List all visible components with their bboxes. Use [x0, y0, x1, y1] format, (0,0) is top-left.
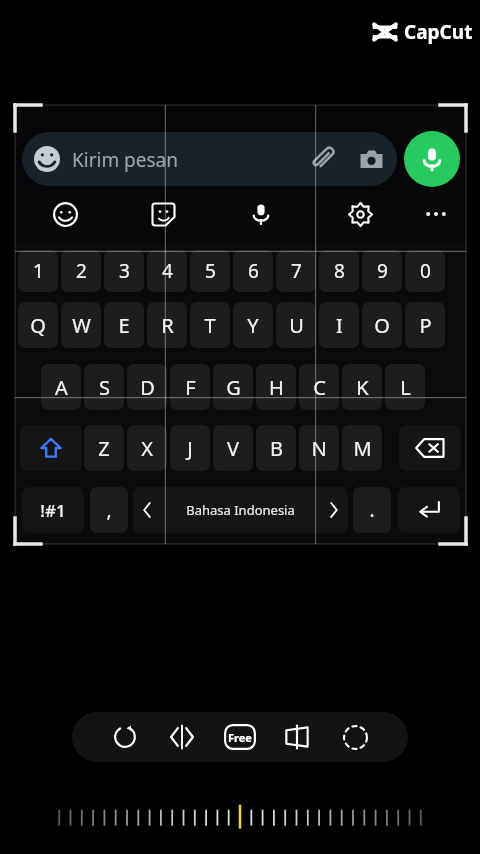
button[interactable]: 3	[104, 250, 144, 292]
staticText: 1	[33, 258, 44, 284]
staticText: !#1	[40, 499, 66, 522]
staticText: .	[369, 497, 375, 523]
staticText: H	[269, 374, 284, 401]
staticText: W	[72, 312, 91, 339]
button[interactable]: Rotate	[101, 713, 149, 761]
button[interactable]: J	[170, 425, 210, 471]
staticText: G	[226, 374, 241, 401]
button[interactable]: D	[127, 364, 167, 410]
staticText: C	[313, 374, 326, 401]
staticText: M	[353, 435, 372, 462]
button[interactable]: !#1	[22, 487, 84, 533]
button[interactable]: W	[61, 302, 101, 348]
staticText: N	[311, 435, 327, 462]
button[interactable]: 0	[405, 250, 445, 292]
button[interactable]: S	[84, 364, 124, 410]
staticText: 2	[76, 258, 87, 284]
button[interactable]: 6	[233, 250, 273, 292]
staticText: Kirim pesan	[72, 147, 179, 173]
button[interactable]: Enter	[398, 487, 460, 533]
button[interactable]: E	[104, 302, 144, 348]
button[interactable]: Attach	[305, 141, 341, 177]
button[interactable]: Backspace	[399, 425, 461, 471]
staticText: Free	[228, 730, 252, 745]
button[interactable]: K	[342, 364, 382, 410]
button[interactable]: G	[213, 364, 253, 410]
button[interactable]: L	[385, 364, 425, 410]
button[interactable]: ,	[90, 487, 128, 533]
staticText: A	[55, 374, 68, 401]
staticText: I	[336, 312, 343, 339]
button[interactable]: H	[256, 364, 296, 410]
staticText: ,	[106, 497, 112, 523]
button[interactable]: .	[353, 487, 391, 533]
button[interactable]: A	[41, 364, 81, 410]
button[interactable]: Bahasa Indonesia	[133, 487, 348, 533]
staticText: 0	[420, 258, 431, 284]
button[interactable]: V	[213, 425, 253, 471]
button[interactable]: N	[299, 425, 339, 471]
button[interactable]: I	[319, 302, 359, 348]
button[interactable]: Stickers	[141, 192, 185, 236]
staticText: 3	[119, 258, 130, 284]
button[interactable]: 2	[61, 250, 101, 292]
staticText: 7	[291, 258, 302, 284]
button[interactable]: 5	[190, 250, 230, 292]
button[interactable]: Mask	[331, 713, 379, 761]
button[interactable]: U	[276, 302, 316, 348]
button[interactable]: Q	[18, 302, 58, 348]
button[interactable]: P	[405, 302, 445, 348]
staticText: 6	[248, 258, 259, 284]
button[interactable]: Emoji	[34, 146, 60, 172]
staticText: X	[141, 435, 153, 462]
button[interactable]: 9	[362, 250, 402, 292]
button[interactable]: C	[299, 364, 339, 410]
button[interactable]: Emoji keyboard	[43, 192, 87, 236]
button[interactable]	[22, 132, 397, 186]
staticText: Q	[30, 312, 46, 339]
button[interactable]: O	[362, 302, 402, 348]
button[interactable]: X	[127, 425, 167, 471]
staticText: U	[289, 312, 304, 339]
staticText: B	[270, 435, 283, 462]
button[interactable]: Y	[233, 302, 273, 348]
button[interactable]: Voice input	[239, 192, 283, 236]
staticText: CapCut	[404, 19, 473, 45]
staticText: T	[204, 312, 216, 339]
button[interactable]: Voice message	[404, 131, 460, 187]
button[interactable]: Flip	[158, 713, 206, 761]
staticText: P	[419, 312, 432, 339]
button[interactable]: Camera	[353, 141, 389, 177]
button[interactable]: Shift	[20, 425, 82, 471]
button[interactable]: B	[256, 425, 296, 471]
staticText: Z	[98, 435, 110, 462]
staticText: Y	[247, 312, 259, 339]
button[interactable]: 1	[18, 250, 58, 292]
button[interactable]: F	[170, 364, 210, 410]
staticText: 8	[334, 258, 345, 284]
button[interactable]: Mirror	[273, 713, 321, 761]
button[interactable]: 8	[319, 250, 359, 292]
button[interactable]: M	[342, 425, 382, 471]
button[interactable]: More options	[414, 192, 458, 236]
staticText: J	[187, 435, 193, 462]
button[interactable]: Z	[84, 425, 124, 471]
staticText: Bahasa Indonesia	[186, 501, 295, 519]
staticText: D	[140, 374, 155, 401]
staticText: L	[400, 374, 411, 401]
staticText: F	[185, 374, 196, 401]
staticText: 4	[162, 258, 173, 284]
button[interactable]: 4	[147, 250, 187, 292]
staticText: 9	[377, 258, 388, 284]
staticText: O	[374, 312, 390, 339]
button[interactable]: R	[147, 302, 187, 348]
button[interactable]: T	[190, 302, 230, 348]
button[interactable]: 7	[276, 250, 316, 292]
staticText: R	[161, 312, 174, 339]
staticText: S	[99, 374, 110, 401]
staticText: E	[118, 312, 130, 339]
button[interactable]: Settings	[338, 192, 382, 236]
staticText: K	[356, 374, 369, 401]
button[interactable]: Aspect ratio Free	[216, 713, 264, 761]
staticText: V	[227, 435, 239, 462]
